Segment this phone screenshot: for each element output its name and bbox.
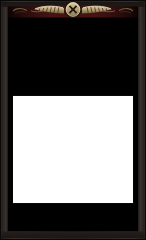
button[interactable]: Decorative framed page [0, 0, 146, 240]
